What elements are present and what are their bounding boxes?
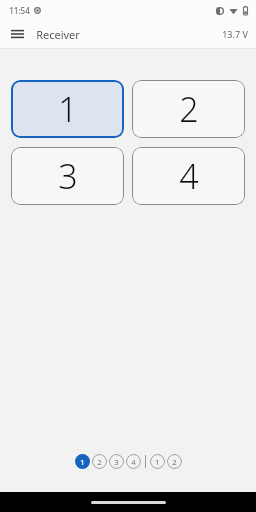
button[interactable]: 1 xyxy=(150,454,165,469)
staticText: 3 xyxy=(114,457,119,467)
staticText: 2 xyxy=(179,86,199,132)
button[interactable]: 4 xyxy=(132,147,245,205)
button[interactable]: 2 xyxy=(132,80,245,138)
staticText: 2 xyxy=(97,457,102,467)
button[interactable]: 3 xyxy=(109,454,124,469)
staticText: 4 xyxy=(179,153,199,199)
button[interactable]: 4 xyxy=(126,454,141,469)
staticText: Receiver xyxy=(36,27,80,42)
staticText: 4 xyxy=(131,457,136,467)
staticText: 3 xyxy=(58,153,78,199)
button[interactable]: 1 xyxy=(75,454,90,469)
button[interactable]: Open navigation menu xyxy=(6,23,28,45)
staticText: 1 xyxy=(155,457,160,467)
button[interactable]: 1 xyxy=(11,80,124,138)
button[interactable]: 2 xyxy=(167,454,182,469)
button[interactable]: 3 xyxy=(11,147,124,205)
staticText: 1 xyxy=(80,457,85,467)
staticText: 13.7 V xyxy=(222,28,248,40)
staticText: 11:54 xyxy=(9,5,30,16)
staticText: 1 xyxy=(58,86,78,132)
staticText: 2 xyxy=(172,457,177,467)
button[interactable]: 2 xyxy=(92,454,107,469)
